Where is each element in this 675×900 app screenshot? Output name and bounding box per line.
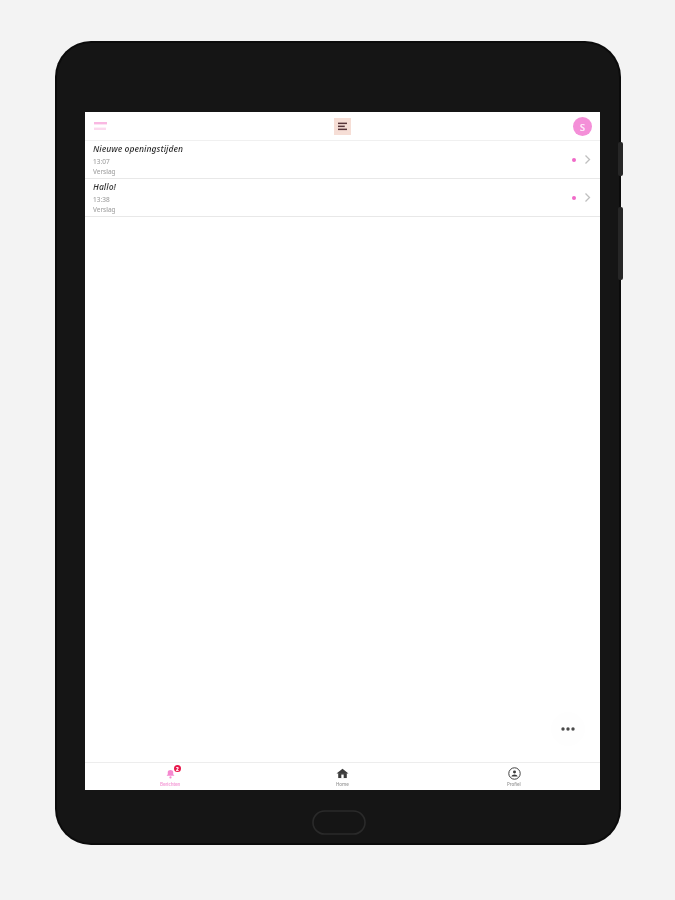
button[interactable]: Hallo! [85,179,600,216]
button[interactable]: Profiel [428,763,600,790]
button[interactable]: Profile [573,117,592,136]
button[interactable]: 2 [85,763,256,790]
button[interactable]: Nieuwe openingstijden [85,141,600,178]
staticText: 2 [176,766,179,772]
staticText: Hallo! [93,181,116,193]
button[interactable]: More options [551,712,585,746]
button[interactable]: Home [256,763,428,790]
staticText: Verslag [93,205,116,214]
staticText: 13:38 [93,195,110,204]
staticText: Nieuwe openingstijden [93,143,184,155]
staticText: Home [336,781,349,787]
staticText: Profiel [507,781,521,787]
staticText: S [580,121,585,133]
staticText: 13:07 [93,157,110,166]
staticText: Verslag [93,167,116,176]
staticText: Berichten [160,781,181,787]
button[interactable]: Logo [334,118,351,135]
button[interactable]: Menu [89,115,111,137]
